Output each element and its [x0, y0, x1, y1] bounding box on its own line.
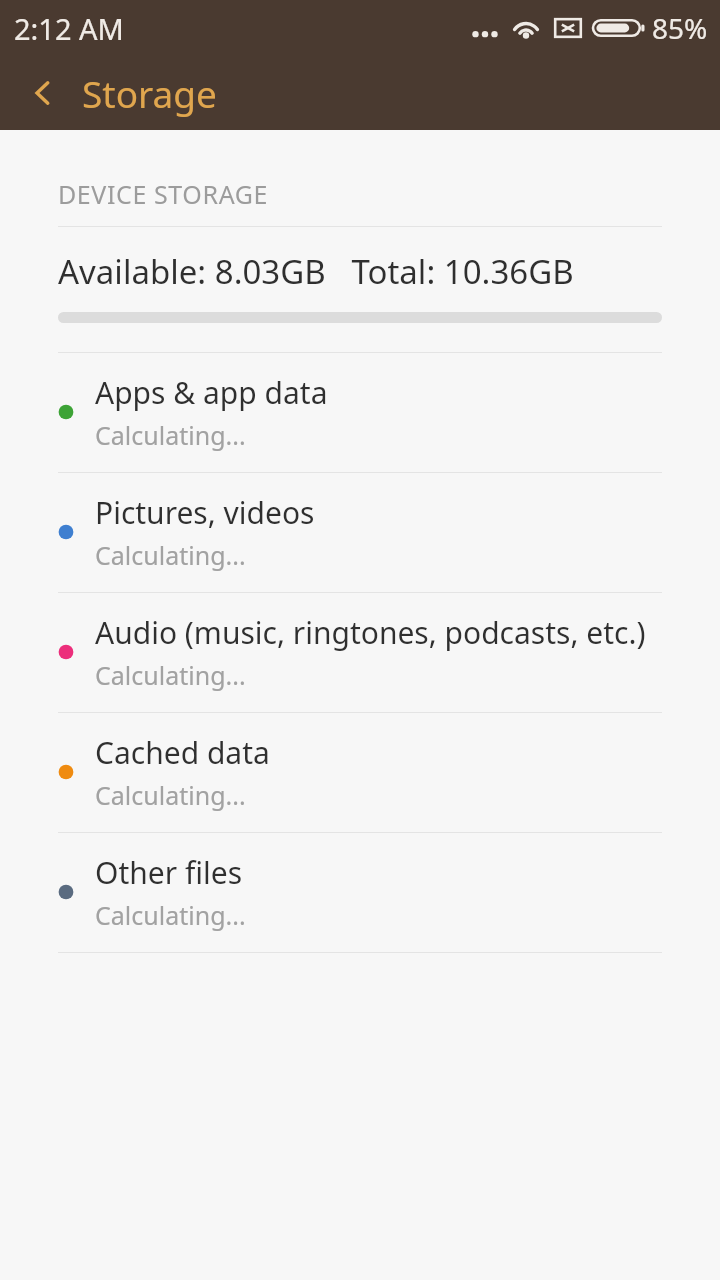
- button[interactable]: Audio (music, ringtones, podcasts, etc.): [0, 593, 720, 712]
- button[interactable]: Other files: [0, 833, 720, 952]
- staticText: Cached data: [95, 732, 270, 773]
- staticText: Calculating...: [95, 898, 246, 932]
- button[interactable]: Pictures, videos: [0, 473, 720, 592]
- staticText: Calculating...: [95, 538, 246, 572]
- button[interactable]: Apps & app data: [0, 353, 720, 472]
- button[interactable]: Back: [20, 70, 66, 116]
- staticText: Other files: [95, 852, 242, 893]
- staticText: Pictures, videos: [95, 492, 315, 533]
- staticText: Calculating...: [95, 778, 246, 812]
- staticText: 2:12 AM: [14, 9, 124, 48]
- staticText: Calculating...: [95, 418, 246, 452]
- staticText: Audio (music, ringtones, podcasts, etc.): [95, 612, 646, 653]
- staticText: 85%: [652, 9, 708, 47]
- staticText: Calculating...: [95, 658, 246, 692]
- staticText: DEVICE STORAGE: [58, 177, 269, 211]
- staticText: Available: 8.03GB Total: 10.36GB: [58, 249, 574, 294]
- staticText: Apps & app data: [95, 372, 328, 413]
- button[interactable]: Cached data: [0, 713, 720, 832]
- staticText: Storage: [82, 68, 217, 118]
